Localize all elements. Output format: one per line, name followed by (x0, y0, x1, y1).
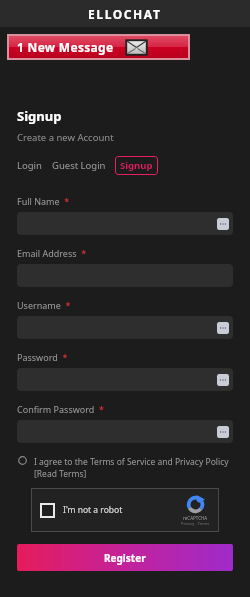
button[interactable]: Password (17, 368, 233, 391)
staticText: Create a new Account (17, 131, 114, 144)
button[interactable]: 1 New Message (9, 36, 188, 58)
button[interactable]: Guest Login (52, 157, 106, 174)
staticText: Signup (120, 159, 153, 172)
staticText: I'm not a robot (63, 504, 123, 516)
button[interactable]: Username (17, 316, 233, 339)
staticText: ELLOCHAT (88, 6, 162, 22)
staticText: Full Name * (17, 195, 70, 207)
staticText: Password * (17, 351, 68, 363)
button[interactable]: I'm not a robot (31, 488, 219, 532)
button[interactable]: Register (17, 544, 233, 571)
button[interactable]: I agree to the Terms of Service and Priv… (17, 456, 233, 480)
staticText: Confirm Password * (17, 403, 104, 415)
staticText: Signup (17, 107, 62, 125)
staticText: Username * (17, 299, 71, 311)
staticText: Register (104, 551, 146, 565)
staticText: I agree to the Terms of Service and Priv… (34, 456, 233, 480)
button[interactable]: Login (17, 157, 42, 174)
staticText: reCAPTCHA (183, 515, 208, 521)
staticText: Privacy - Terms (181, 521, 210, 526)
staticText: Email Address * (17, 247, 87, 259)
button[interactable]: Full Name (17, 212, 233, 235)
staticText: 1 New Message (17, 39, 114, 55)
button[interactable]: Signup (115, 156, 158, 175)
staticText: Guest Login (52, 159, 106, 172)
staticText: Login (17, 159, 42, 172)
button[interactable]: Confirm Password (17, 420, 233, 443)
